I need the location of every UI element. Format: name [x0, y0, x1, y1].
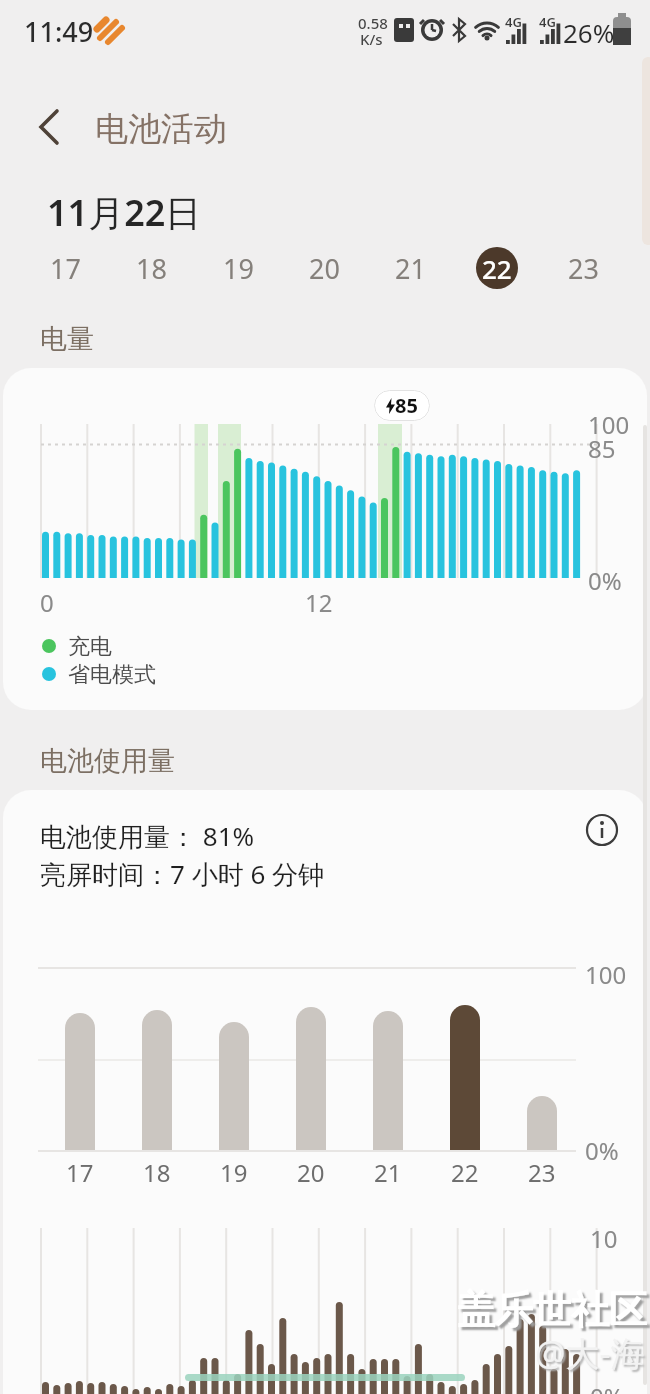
staticText: 100 [588, 408, 630, 441]
staticText: 17 [50, 250, 81, 287]
button[interactable]: 21 [389, 247, 431, 289]
staticText: 22 [482, 251, 512, 286]
staticText: @大-海 [535, 1330, 645, 1376]
staticText: K/s [360, 29, 383, 49]
staticText: 电池使用量 [40, 744, 175, 778]
staticText: 85 [588, 432, 616, 465]
staticText: 电量 [40, 322, 94, 356]
staticText: 17 [66, 1156, 94, 1189]
staticText: 4G [505, 13, 522, 31]
staticText: 23 [568, 250, 599, 287]
staticText: 0% [588, 564, 622, 597]
staticText: 11:49 [24, 13, 94, 50]
staticText: 20 [309, 250, 340, 287]
button[interactable] [28, 102, 78, 152]
staticText: 21 [374, 1156, 402, 1189]
button[interactable]: 22 [476, 247, 518, 289]
staticText: 亮屏时间：7 小时 6 分钟 [40, 856, 325, 892]
staticText: 电池使用量： 81% [40, 818, 255, 854]
staticText: 0% [585, 1134, 619, 1167]
staticText: 省电模式 [68, 661, 156, 689]
button[interactable]: 19 [217, 247, 259, 289]
staticText: 23 [528, 1156, 556, 1189]
button[interactable]: 20 [303, 247, 345, 289]
button[interactable]: 18 [130, 247, 172, 289]
staticText: 100 [585, 958, 627, 991]
staticText: 85 [395, 392, 418, 419]
staticText: 0 [40, 586, 54, 619]
staticText: 0.58 [358, 13, 388, 33]
button[interactable] [585, 813, 619, 847]
staticText: 18 [143, 1156, 171, 1189]
staticText: 20 [297, 1156, 325, 1189]
staticText: 盖乐世社区 [457, 1286, 647, 1334]
staticText: 12 [305, 586, 333, 619]
staticText: 11月22日 [47, 188, 202, 237]
staticText: 电池活动 [95, 108, 227, 150]
button[interactable]: 23 [562, 247, 604, 289]
staticText: 4G [539, 13, 556, 31]
staticText: 22 [451, 1156, 479, 1189]
staticText: 21 [395, 250, 426, 287]
staticText: 19 [220, 1156, 248, 1189]
staticText: 0% [590, 1380, 624, 1394]
staticText: 26% [563, 15, 615, 50]
staticText: 10 [590, 1222, 618, 1255]
button[interactable]: 17 [44, 247, 86, 289]
staticText: 18 [136, 250, 167, 287]
staticText: 充电 [68, 633, 112, 661]
staticText: 19 [223, 250, 254, 287]
